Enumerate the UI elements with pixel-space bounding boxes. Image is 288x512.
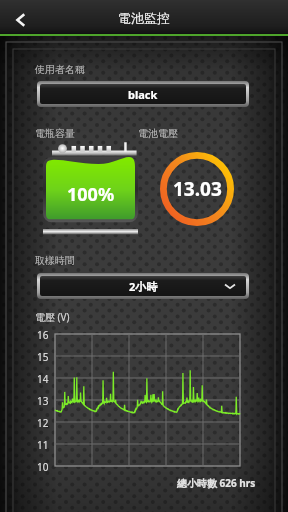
- staticText: 14: [37, 372, 49, 384]
- staticText: 使用者名稱: [35, 63, 85, 76]
- staticText: 電瓶容量: [35, 127, 75, 140]
- staticText: 電池監控: [118, 10, 170, 26]
- staticText: 2小時: [129, 279, 158, 294]
- staticText: 取樣時間: [35, 254, 75, 267]
- button[interactable]: black: [40, 84, 246, 104]
- staticText: black: [128, 87, 158, 102]
- staticText: 12: [37, 416, 49, 428]
- staticText: 100%: [67, 182, 115, 207]
- staticText: 13.03: [173, 176, 222, 202]
- staticText: 15: [37, 350, 49, 362]
- staticText: 11: [37, 438, 49, 450]
- staticText: 13: [37, 394, 49, 406]
- staticText: 16: [37, 328, 49, 340]
- staticText: 電壓 (V): [35, 310, 70, 324]
- button[interactable]: 2小時: [40, 276, 246, 296]
- staticText: 10: [37, 460, 49, 472]
- staticText: 電池電壓: [138, 127, 178, 140]
- button[interactable]: Back: [0, 0, 41, 33]
- staticText: 總小時數 626 hrs: [177, 476, 256, 490]
